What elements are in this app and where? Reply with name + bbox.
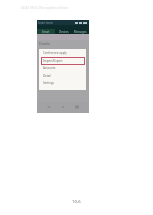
staticText: Detail <box>43 74 51 78</box>
button[interactable]: Smart <box>37 29 55 35</box>
button[interactable]: Home <box>61 105 65 109</box>
button[interactable]: Messages <box>72 29 89 35</box>
button[interactable]: Settings <box>39 79 86 87</box>
staticText: Mi A1 EN 0.1 Encryption of data <box>21 6 68 10</box>
button[interactable]: Accounts <box>39 64 86 72</box>
staticText: Devices <box>59 30 69 34</box>
staticText: Import/Export <box>43 59 63 63</box>
staticText: Messages <box>74 30 87 34</box>
button[interactable]: Recent apps <box>75 105 79 109</box>
staticText: Details <box>39 41 50 46</box>
staticText: 10-6 <box>72 199 81 205</box>
button[interactable]: Conference apply <box>39 49 86 57</box>
button[interactable]: Back <box>47 105 51 109</box>
button[interactable]: Detail <box>39 72 86 80</box>
staticText: Smart home <box>38 21 54 25</box>
staticText: Smart <box>42 30 50 34</box>
staticText: Accounts <box>43 66 56 70</box>
button[interactable]: Devices <box>55 29 72 35</box>
button[interactable]: Import/Export <box>39 57 86 65</box>
staticText: Conference apply <box>43 51 67 55</box>
staticText: Settings <box>43 81 54 85</box>
